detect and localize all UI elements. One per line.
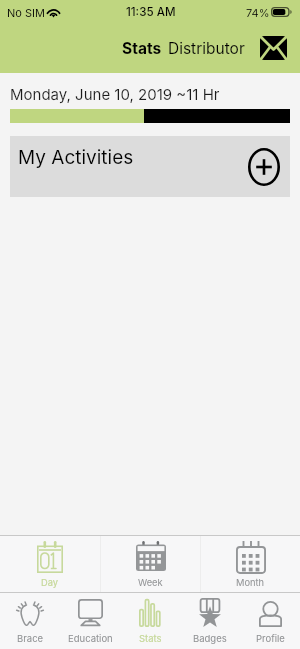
button[interactable]: Month — [201, 536, 300, 592]
staticText: Stats — [122, 39, 162, 58]
button[interactable]: Week — [101, 536, 200, 592]
button[interactable]: Badges — [180, 593, 240, 649]
staticText: Brace — [17, 633, 44, 644]
staticText: Week — [138, 577, 163, 588]
button[interactable]: My Activities — [10, 136, 290, 197]
staticText: No SIM — [7, 6, 45, 19]
staticText: Stats — [139, 633, 162, 644]
staticText: Distributor — [168, 39, 245, 58]
staticText: Profile — [256, 633, 285, 644]
button[interactable]: Profile — [240, 593, 300, 649]
button[interactable]: Add activity — [244, 147, 284, 187]
staticText: 11:35 AM — [126, 5, 176, 19]
staticText: Day — [41, 577, 59, 588]
staticText: Education — [68, 633, 113, 644]
staticText: 74% — [246, 6, 270, 19]
button[interactable]: Brace — [0, 593, 60, 649]
button[interactable]: Messages — [257, 32, 289, 64]
button[interactable]: Education — [60, 593, 120, 649]
staticText: Month — [236, 577, 265, 588]
button[interactable]: Stats — [120, 593, 180, 649]
button[interactable]: Day — [0, 536, 100, 592]
staticText: My Activities — [18, 146, 134, 169]
staticText: Badges — [193, 633, 227, 644]
staticText: Monday, June 10, 2019 ~11 Hr — [10, 85, 220, 103]
